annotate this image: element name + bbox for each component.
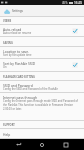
staticText: 45%: [62, 1, 68, 5]
button[interactable]: Home: [36, 139, 48, 150]
button[interactable]: Back: [12, 139, 24, 150]
staticText: Location to save.: [3, 49, 29, 53]
button[interactable]: Location to save.: [0, 47, 84, 59]
button[interactable]: Toggle: [71, 27, 79, 35]
staticText: Help: [3, 132, 11, 136]
staticText: Internet pass through: [3, 95, 38, 99]
staticText: FLASHAIR CARD SETTING: [3, 75, 35, 79]
staticText: Settings: [12, 9, 23, 13]
button[interactable]: App icon: [3, 8, 10, 15]
button[interactable]: Auto-reload: [0, 25, 84, 37]
button[interactable]: SSID and Password: [0, 81, 84, 93]
button[interactable]: Toggle: [71, 61, 79, 69]
staticText: Config the Internet pass through mode SS…: [3, 99, 79, 111]
staticText: Sort by FlashAir SSID: [3, 61, 36, 65]
button[interactable]: Sort by FlashAir SSID: [0, 59, 84, 72]
button[interactable]: Recents: [60, 139, 72, 150]
staticText: Auto-reload on resume: [3, 31, 32, 35]
button[interactable]: Internet pass through: [0, 93, 84, 121]
staticText: Config the SSID and Password of the Flas…: [3, 87, 58, 91]
staticText: SUPPORT: [3, 123, 15, 127]
staticText: VIEWS: [3, 19, 12, 23]
staticText: Sort by file update time: [3, 53, 32, 57]
button[interactable]: Help: [0, 129, 84, 139]
staticText: 16:25: [74, 1, 83, 5]
staticText: On: [3, 65, 7, 69]
staticText: Auto-reload: [3, 27, 22, 31]
staticText: SAVING: [3, 41, 13, 45]
staticText: SSID and Password: [3, 83, 33, 87]
